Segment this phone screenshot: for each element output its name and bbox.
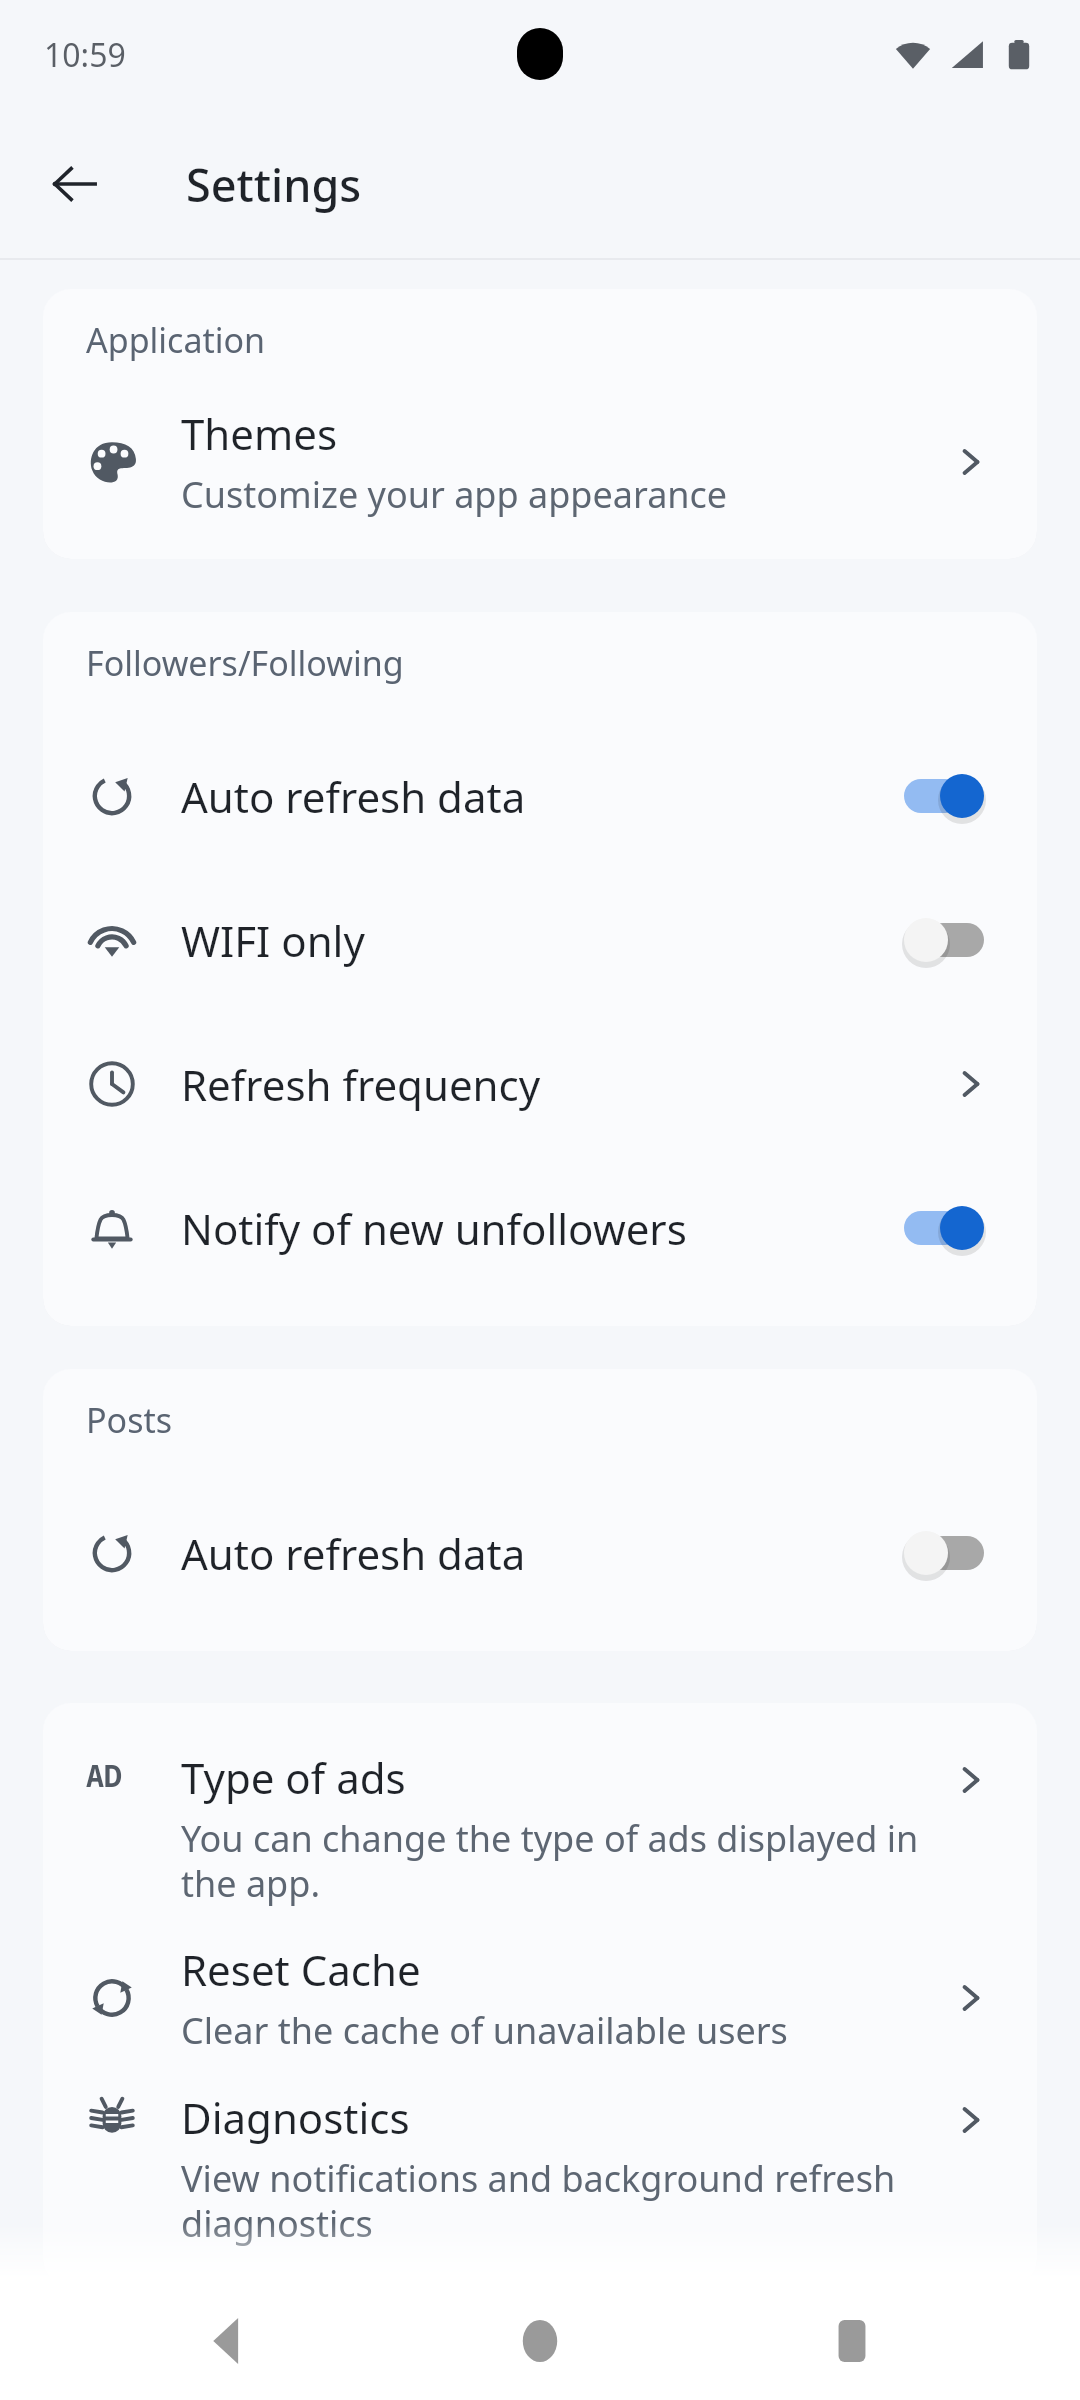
staticText: Application	[86, 317, 266, 363]
staticText: Clear the cache of unavailable users	[181, 2006, 788, 2055]
button[interactable]: Recent apps	[804, 2293, 900, 2389]
staticText: Reset Cache	[181, 1941, 421, 1998]
button[interactable]: Back	[180, 2293, 276, 2389]
staticText: Auto refresh data	[181, 1525, 898, 1582]
button[interactable]: Back	[32, 141, 118, 227]
button[interactable]: On	[898, 764, 994, 828]
staticText: Notify of new unfollowers	[181, 1200, 898, 1257]
button[interactable]: Diagnostics	[43, 2089, 1037, 2247]
staticText: Refresh frequency	[181, 1056, 948, 1113]
staticText: Customize your app appearance	[181, 470, 728, 519]
button[interactable]: Refresh frequency	[43, 1012, 1037, 1156]
staticText: Type of ads	[181, 1749, 406, 1806]
button[interactable]: Auto refresh data	[43, 724, 1037, 868]
staticText: Posts	[86, 1397, 172, 1443]
button[interactable]: Auto refresh data	[43, 1481, 1037, 1625]
button[interactable]: Themes	[43, 405, 1037, 519]
button[interactable]: ADS	[43, 1749, 1037, 1907]
staticText: Themes	[181, 405, 338, 462]
button[interactable]: Reset Cache	[43, 1941, 1037, 2055]
button[interactable]: On	[898, 1196, 994, 1260]
button[interactable]: WIFI only	[43, 868, 1037, 1012]
staticText: Diagnostics	[181, 2089, 410, 2146]
staticText: 10:59	[44, 33, 126, 77]
staticText: ADS	[86, 1755, 138, 1801]
button[interactable]: Off	[898, 908, 994, 972]
staticText: View notifications and background refres…	[181, 2154, 930, 2247]
staticText: Followers/Following	[86, 640, 404, 686]
button[interactable]: Off	[898, 1521, 994, 1585]
staticText: Auto refresh data	[181, 768, 898, 825]
staticText: Settings	[186, 154, 362, 215]
staticText: WIFI only	[181, 912, 898, 969]
staticText: You can change the type of ads displayed…	[181, 1814, 930, 1907]
button[interactable]: Notify of new unfollowers	[43, 1156, 1037, 1300]
button[interactable]: Home	[492, 2293, 588, 2389]
